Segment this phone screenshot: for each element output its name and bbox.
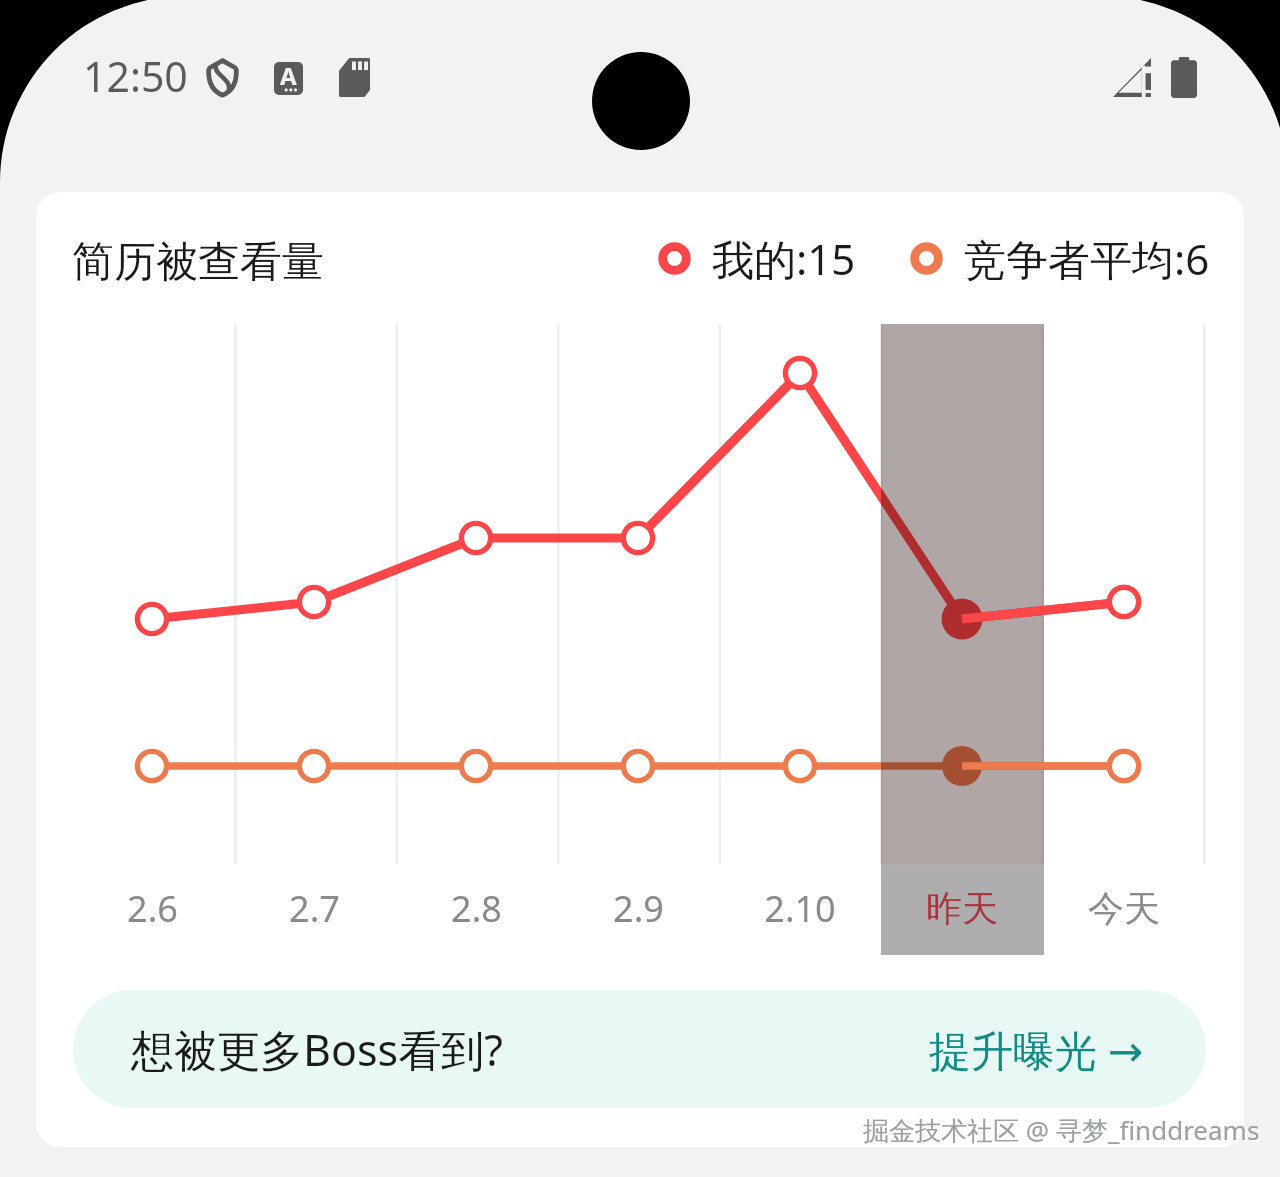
button[interactable]: 2.6 <box>71 873 233 941</box>
staticText: 2.6 <box>127 884 178 933</box>
staticText: 提升曝光 → <box>929 1021 1144 1078</box>
other: Security <box>206 57 239 98</box>
button[interactable]: 2.10 <box>719 873 881 941</box>
other: SD card <box>339 58 370 97</box>
button[interactable]: 2.8 <box>395 873 557 941</box>
button[interactable]: 2.9 <box>557 873 719 941</box>
staticText: 昨天 <box>926 886 998 931</box>
staticText: 掘金技术社区 @ 寻梦_finddreams <box>865 1114 1262 1150</box>
staticText: 掘金技术社区 @ 寻梦_finddreams <box>863 1112 1260 1148</box>
staticText: A <box>280 62 297 92</box>
button[interactable]: 我的:15 <box>658 230 856 287</box>
staticText: 竞争者平均:6 <box>964 230 1210 287</box>
button[interactable]: 2.7 <box>233 873 395 941</box>
button[interactable]: 今天 <box>1043 873 1205 941</box>
staticText: 2.8 <box>451 884 502 933</box>
staticText: 2.7 <box>289 884 340 933</box>
button[interactable]: 竞争者平均:6 <box>910 230 1210 287</box>
staticText: 今天 <box>1088 886 1160 931</box>
staticText: 12:50 <box>83 48 188 104</box>
staticText: 2.9 <box>613 884 664 933</box>
button[interactable]: 昨天 <box>881 873 1043 941</box>
other: Battery <box>1171 57 1197 98</box>
button[interactable]: 想被更多Boss看到? <box>73 990 1206 1108</box>
other: Input method <box>274 62 303 95</box>
other: Mobile signal <box>1113 58 1151 97</box>
staticText: 我的:15 <box>712 230 856 287</box>
staticText: 想被更多Boss看到? <box>131 1020 503 1079</box>
staticText: 简历被查看量 <box>72 236 324 289</box>
staticText: 2.10 <box>764 884 836 933</box>
